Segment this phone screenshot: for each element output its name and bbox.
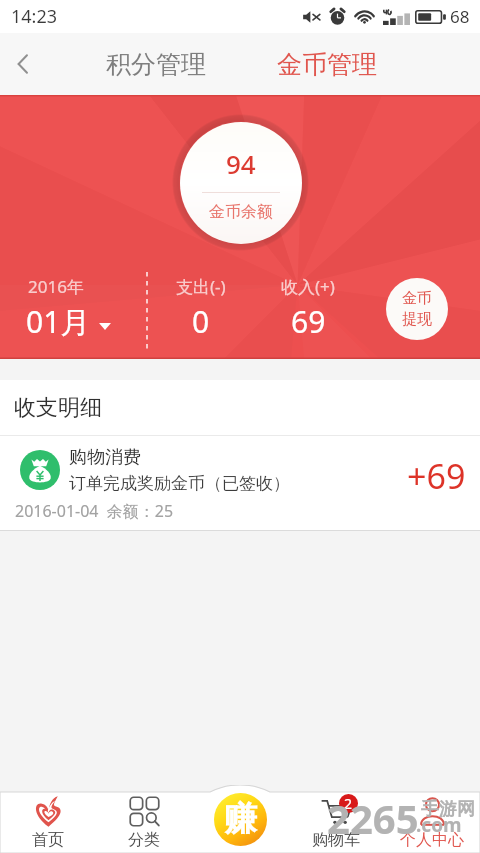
staticText: 支出(-) — [176, 275, 226, 298]
button[interactable]: 赚 — [214, 793, 267, 846]
staticText: 收入(+) — [281, 275, 335, 298]
button[interactable]: 分类 — [96, 793, 192, 853]
staticText: 积分管理 — [106, 49, 206, 80]
staticText: 2 — [344, 794, 353, 813]
staticText: 69 — [291, 301, 326, 342]
button[interactable]: 积分管理 — [98, 37, 214, 92]
staticText: .com — [416, 812, 462, 838]
button[interactable]: 94 — [180, 122, 302, 244]
staticText: 金币 — [402, 289, 432, 308]
button[interactable]: 金币管理 — [269, 37, 385, 92]
staticText: 金币余额 — [209, 202, 273, 222]
staticText: 手游网 — [421, 798, 475, 821]
staticText: 收支明细 — [14, 394, 102, 422]
staticText: 金币管理 — [277, 49, 377, 80]
button[interactable]: 金币 — [386, 278, 448, 340]
staticText: 68 — [450, 5, 470, 28]
staticText: 提现 — [402, 310, 432, 329]
staticText: 94 — [226, 146, 256, 181]
staticText: 01月 — [26, 301, 91, 342]
staticText: 14:23 — [11, 4, 58, 29]
staticText: 2016年 — [28, 275, 84, 298]
staticText: 2016-01-04 余额：25 — [15, 500, 174, 522]
staticText: 首页 — [32, 830, 64, 850]
button[interactable]: 个人中心 — [384, 793, 480, 853]
staticText: 购物消费 — [69, 446, 141, 469]
button[interactable]: 2016年 — [26, 275, 111, 342]
staticText: 0 — [192, 301, 210, 342]
staticText: 购物车 — [312, 830, 360, 850]
staticText: 2265 — [327, 791, 419, 845]
button[interactable]: 购物消费 — [0, 436, 480, 531]
staticText: +69 — [407, 453, 466, 499]
staticText: 个人中心 — [400, 830, 464, 850]
staticText: 赚 — [224, 798, 257, 840]
button[interactable]: 首页 — [0, 793, 96, 853]
staticText: 分类 — [128, 830, 160, 850]
button[interactable]: 2 — [288, 793, 384, 853]
staticText: 订单完成奖励金币（已签收） — [69, 473, 290, 494]
button[interactable]: Back — [0, 33, 46, 95]
